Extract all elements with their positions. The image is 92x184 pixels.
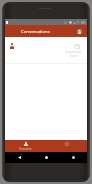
button[interactable]: Home: [33, 152, 60, 163]
staticText: events: [70, 54, 78, 58]
staticText: Conversations: [21, 28, 50, 34]
button[interactable]: Recents: [60, 152, 87, 163]
button[interactable]: Favourites: [5, 140, 46, 152]
button[interactable]: Contact: [7, 41, 17, 51]
button[interactable]: Account: [77, 29, 82, 34]
staticText: no upcoming: [65, 50, 82, 54]
button[interactable]: Back: [5, 152, 33, 163]
staticText: Favourites: [19, 147, 32, 151]
staticText: Conversations: [58, 147, 76, 151]
button[interactable]: Conversations: [46, 140, 87, 152]
